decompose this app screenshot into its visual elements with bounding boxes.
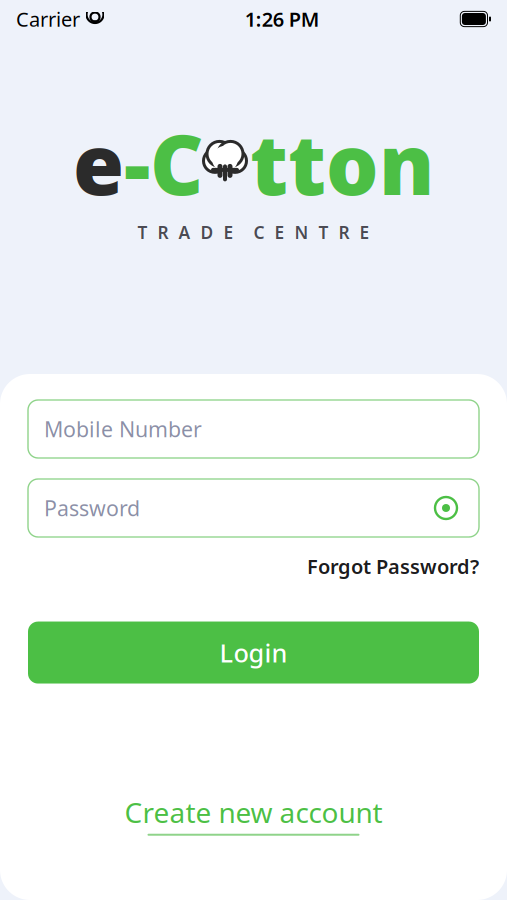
staticText: Mobile Number: [44, 415, 202, 443]
button[interactable]: Password: [28, 479, 479, 537]
staticText: Create new account: [124, 794, 382, 831]
staticText: Forgot Password?: [307, 553, 479, 580]
button[interactable]: Login: [28, 622, 479, 684]
staticText: e: [73, 108, 124, 218]
button[interactable]: Forgot Password?: [307, 553, 479, 580]
staticText: T R A D E: [137, 221, 233, 244]
staticText: 1:26 PM: [245, 6, 320, 32]
button[interactable]: Mobile Number: [28, 400, 479, 458]
staticText: -: [124, 108, 150, 218]
staticText: C E N T R E: [253, 221, 369, 244]
staticText: Carrier: [16, 6, 80, 32]
button[interactable]: Create new account: [124, 794, 382, 836]
staticText: Login: [219, 636, 287, 669]
staticText: C: [150, 108, 204, 218]
button[interactable]: Show password: [429, 491, 463, 525]
staticText: Password: [44, 494, 140, 522]
staticText: tton: [250, 108, 434, 218]
